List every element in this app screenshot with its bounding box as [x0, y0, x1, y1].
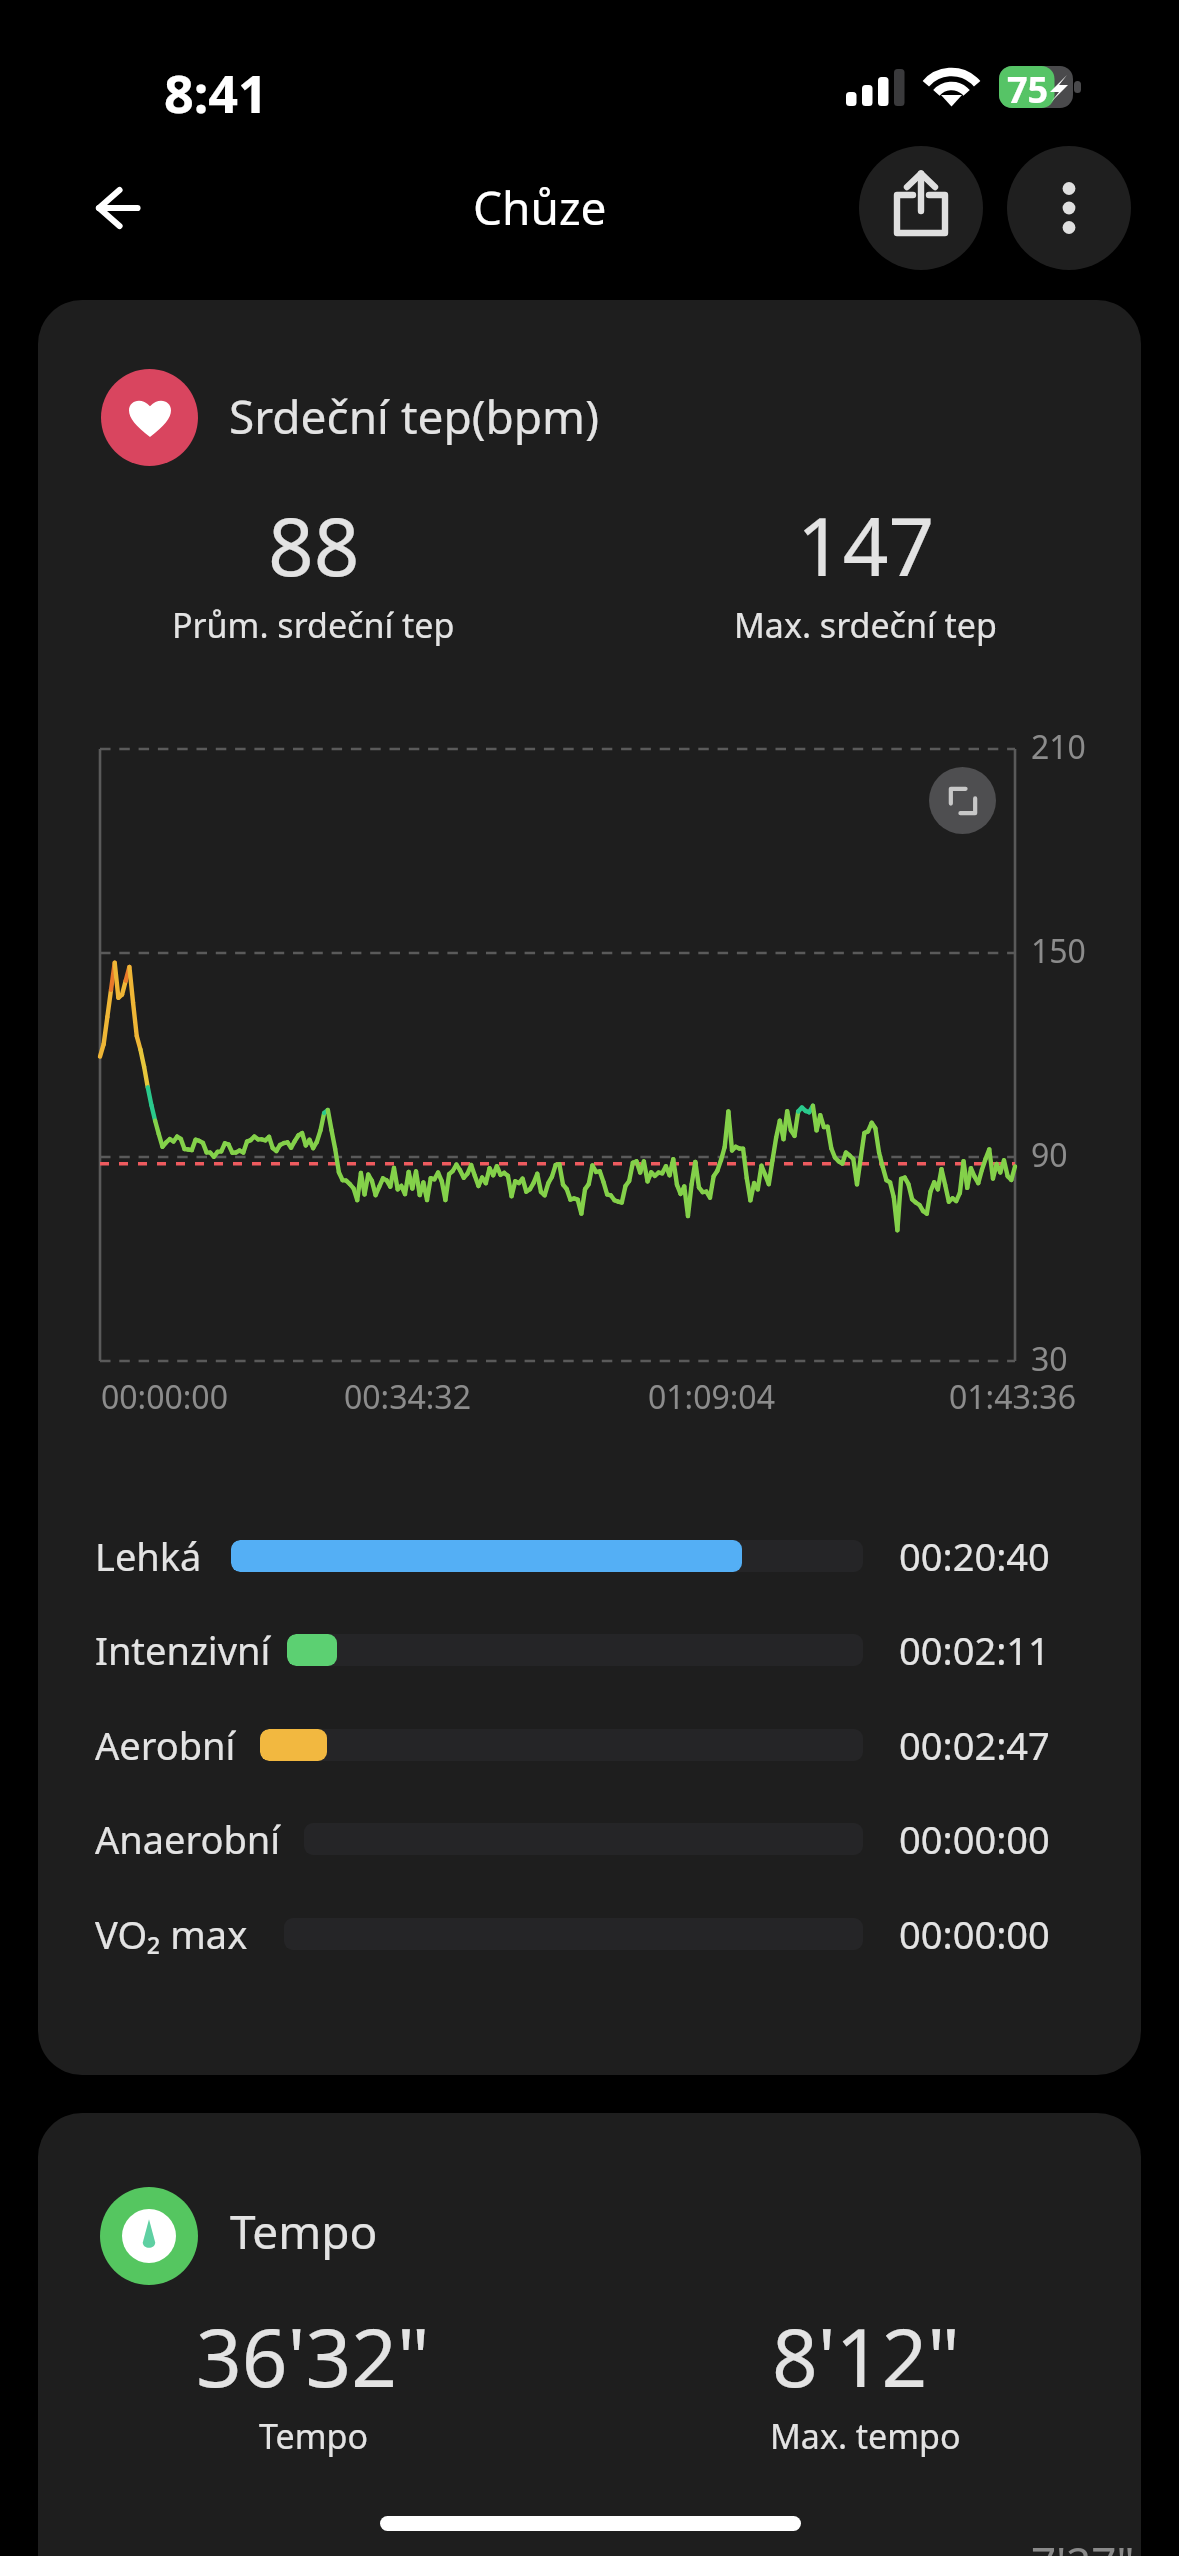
button[interactable]: More options	[1007, 146, 1131, 270]
button[interactable]: Anaerobní	[38, 1806, 1141, 1872]
staticText: Max. tempo	[770, 2413, 961, 2459]
button[interactable]: Back	[52, 151, 166, 265]
staticText: 00:02:11	[899, 1624, 1050, 1676]
staticText: Tempo	[259, 2413, 368, 2459]
button[interactable]: Tempo	[38, 2113, 1141, 2556]
button[interactable]: Srdeční tep(bpm)	[38, 300, 1141, 2075]
button[interactable]: Intenzivní	[38, 1617, 1141, 1683]
staticText: Intenzivní	[95, 1624, 271, 1676]
staticText: 00:00:00	[899, 1813, 1050, 1865]
staticText: 36'32"	[196, 2301, 430, 2410]
staticText: Max. srdeční tep	[734, 602, 997, 648]
staticText: 150	[1031, 929, 1086, 973]
staticText: 01:09:04	[648, 1375, 775, 1419]
staticText: 210	[1031, 725, 1086, 769]
staticText: 88	[268, 490, 360, 599]
staticText: 00:02:47	[899, 1719, 1050, 1771]
staticText: Lehká	[95, 1530, 202, 1582]
staticText: Chůze	[473, 176, 607, 239]
staticText: Anaerobní	[95, 1813, 281, 1865]
staticText: 8'12"	[772, 2301, 960, 2410]
staticText: Tempo	[230, 2200, 378, 2263]
button[interactable]: Expand chart	[929, 767, 996, 834]
staticText: Prům. srdeční tep	[172, 602, 455, 648]
staticText: 00:00:00	[101, 1375, 228, 1419]
staticText: 00:00:00	[899, 1908, 1050, 1960]
staticText: 8:41	[164, 57, 268, 128]
button[interactable]: Lehká	[38, 1523, 1141, 1589]
staticText: 147	[797, 490, 935, 599]
staticText: 30	[1031, 1337, 1068, 1381]
staticText: 90	[1031, 1133, 1068, 1177]
staticText: 00:34:32	[344, 1375, 471, 1419]
staticText: VO₂ max	[95, 1908, 248, 1960]
staticText: Srdeční tep(bpm)	[229, 385, 599, 448]
staticText: 01:43:36	[949, 1375, 1076, 1419]
staticText: 7'27"	[1031, 2532, 1135, 2556]
button[interactable]: Share	[859, 146, 983, 270]
staticText: Aerobní	[95, 1719, 236, 1771]
staticText: 75	[1007, 65, 1049, 114]
staticText: 00:20:40	[899, 1530, 1050, 1582]
button[interactable]: Aerobní	[38, 1712, 1141, 1778]
button[interactable]: VO₂ max	[38, 1901, 1141, 1967]
